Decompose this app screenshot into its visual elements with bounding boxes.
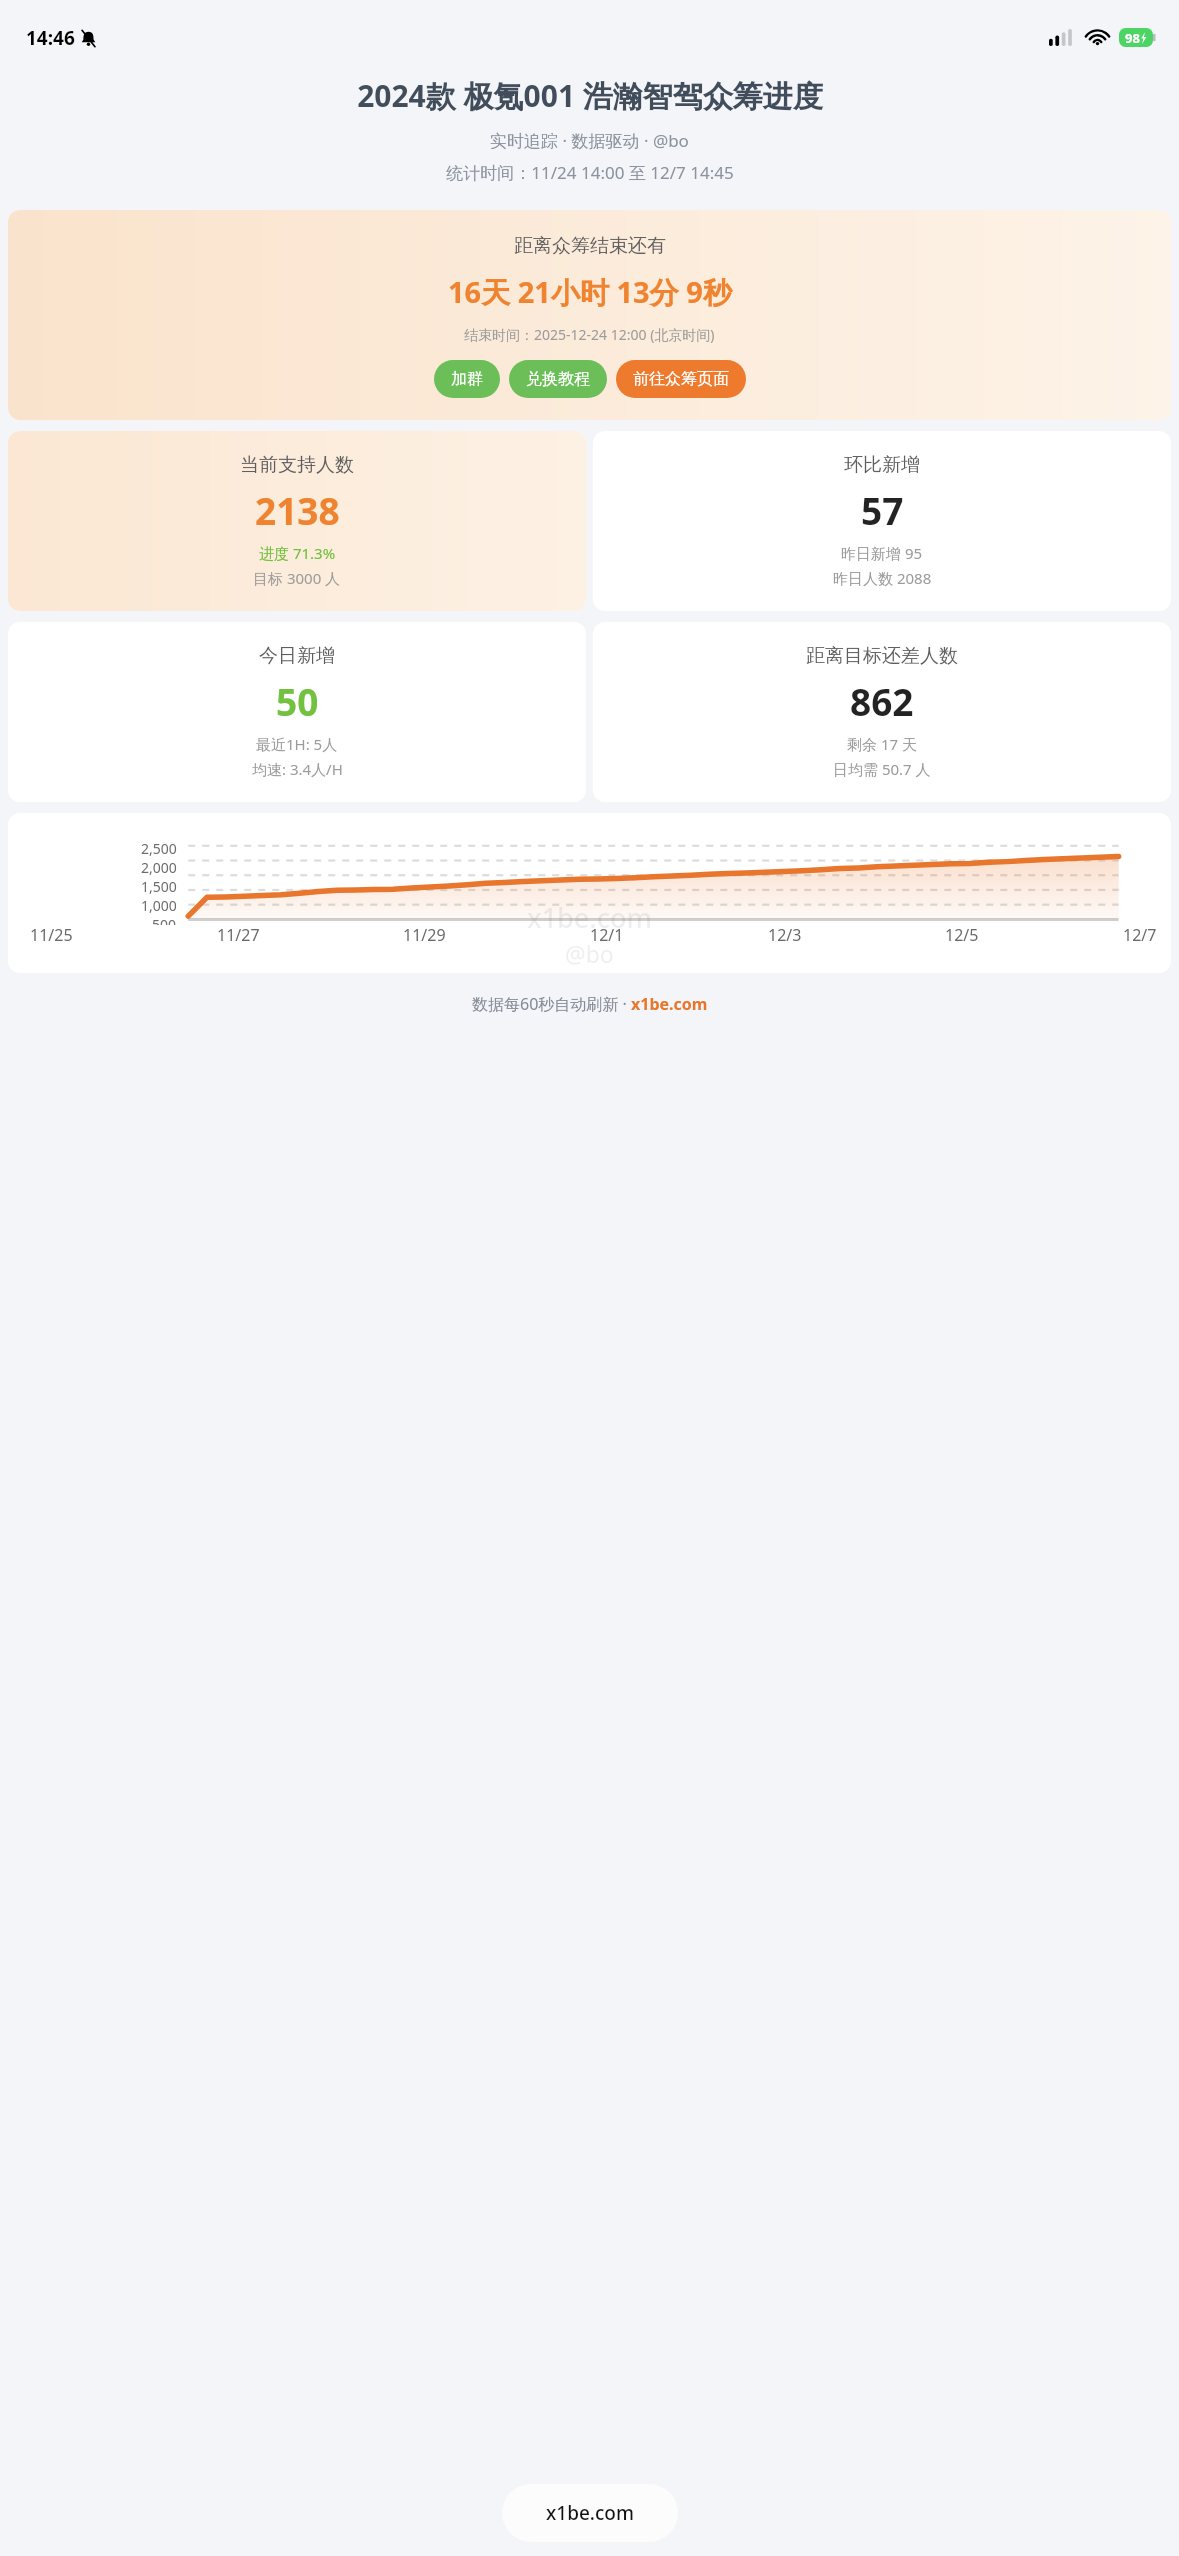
staticText: @bo [565, 938, 614, 969]
staticText: 距离众筹结束还有 [514, 234, 666, 258]
staticText: 11/27 [217, 924, 260, 946]
staticText: 1,500 [141, 877, 177, 896]
button[interactable]: 兑换教程 [509, 360, 607, 398]
staticText: 统计时间：11/24 14:00 至 12/7 14:45 [446, 161, 734, 184]
staticText: 环比新增 [844, 453, 920, 477]
staticText: 最近1H: 5人 [256, 734, 338, 754]
staticText: 均速: 3.4人/H [252, 759, 343, 779]
button[interactable]: 距离目标还差人数 [593, 622, 1171, 802]
staticText: 今日新增 [259, 644, 335, 668]
staticText: x1be.com [527, 899, 653, 936]
staticText: 862 [850, 676, 914, 726]
staticText: x1be.com [631, 993, 708, 1015]
staticText: 剩余 17 天 [847, 734, 917, 754]
staticText: 12/1 [590, 924, 624, 946]
button[interactable]: 距离众筹结束还有 [8, 210, 1171, 420]
button[interactable]: 当前支持人数 [8, 431, 586, 611]
staticText: 50 [276, 676, 319, 726]
staticText: 57 [861, 485, 904, 535]
staticText: 12/7 [1123, 924, 1157, 946]
staticText: 数据每60秒自动刷新 · [472, 993, 631, 1015]
staticText: 前往众筹页面 [633, 369, 729, 389]
staticText: 进度 71.3% [259, 543, 336, 563]
staticText: 2138 [255, 485, 340, 535]
staticText: 2,000 [141, 858, 177, 877]
button[interactable]: 2,500 [8, 813, 1171, 973]
staticText: 14:46 [26, 25, 75, 51]
button[interactable]: 前往众筹页面 [616, 360, 746, 398]
staticText: 目标 3000 人 [253, 568, 341, 588]
staticText: 当前支持人数 [240, 453, 354, 477]
button[interactable]: 今日新增 [8, 622, 586, 802]
staticText: 16天 21小时 13分 9秒 [448, 272, 732, 312]
staticText: 昨日人数 2088 [833, 568, 932, 588]
staticText: 12/3 [768, 924, 802, 946]
staticText: 日均需 50.7 人 [833, 759, 931, 779]
staticText: 1,000 [141, 896, 177, 915]
staticText: 加群 [451, 369, 483, 389]
button[interactable]: 加群 [434, 360, 500, 398]
staticText: 兑换教程 [526, 369, 590, 389]
staticText: 98 [1125, 29, 1140, 47]
staticText: 距离目标还差人数 [806, 644, 958, 668]
staticText: 12/5 [945, 924, 979, 946]
staticText: 2,500 [141, 839, 177, 858]
button[interactable]: x1be.com [631, 993, 708, 1015]
staticText: 500 [152, 915, 177, 925]
staticText: 结束时间：2025-12-24 12:00 (北京时间) [464, 325, 715, 344]
staticText: x1be.com [546, 2500, 634, 2526]
button[interactable]: x1be.com [502, 2484, 678, 2542]
button[interactable]: 环比新增 [593, 431, 1171, 611]
staticText: 11/25 [30, 924, 73, 946]
staticText: 2024款 极氪001 浩瀚智驾众筹进度 [357, 75, 823, 116]
staticText: 实时追踪 · 数据驱动 · @bo [490, 129, 689, 152]
staticText: 昨日新增 95 [841, 543, 923, 563]
staticText: 11/29 [403, 924, 446, 946]
